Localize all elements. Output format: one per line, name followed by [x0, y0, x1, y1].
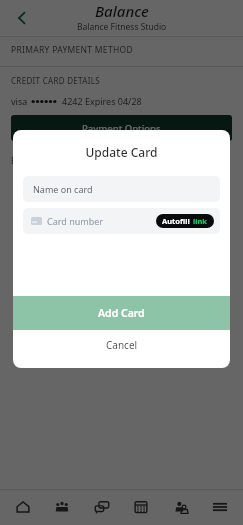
staticText: visa [11, 95, 28, 107]
staticText: PRIMARY PAYMENT METHOD [11, 44, 133, 56]
staticText: BILLING [11, 155, 45, 166]
button[interactable]: Cancel [13, 330, 230, 360]
staticText: CREDIT CARD DETAILS [11, 75, 100, 86]
button[interactable]: Add Card [13, 296, 230, 330]
staticText: 4242 Expires 04/28 [62, 95, 142, 107]
staticText: Add Card [98, 306, 145, 320]
staticText: Payment Options [82, 122, 161, 135]
staticText: Balance Fitness Studio [77, 21, 167, 33]
button[interactable]: Messages [85, 490, 119, 524]
staticText: Card number [47, 215, 104, 227]
staticText: link [193, 216, 208, 226]
staticText: Cancel [106, 338, 138, 352]
button[interactable]: Menu [203, 490, 237, 524]
button[interactable]: Schedule [124, 490, 158, 524]
button[interactable]: Card number [23, 208, 220, 234]
staticText: Balance [95, 1, 149, 21]
staticText: Autofill [162, 216, 190, 226]
button[interactable]: Back [6, 2, 38, 34]
button[interactable]: Home [6, 490, 40, 524]
staticText: Name on card [33, 183, 93, 195]
button[interactable]: Payment Options [11, 115, 232, 141]
button[interactable]: Name on card [23, 176, 220, 202]
button[interactable]: Autofill [156, 214, 214, 228]
button[interactable]: Community [45, 490, 79, 524]
button[interactable]: Profile [164, 490, 198, 524]
staticText: Update Card [13, 144, 230, 160]
